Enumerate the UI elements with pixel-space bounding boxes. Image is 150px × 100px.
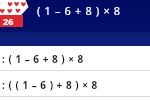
button[interactable]: : ( 1 – 6 + 8 ) × 8 <box>0 46 150 71</box>
staticText: : ( ( 1 – 6 ) + 8 ) × 8 <box>2 78 98 92</box>
button[interactable]: Card game <box>0 0 28 28</box>
button[interactable]: : ( ( 1 – 6 ) + 8 ) × 8 <box>0 71 150 97</box>
staticText: : ( 1 – 6 + 8 ) × 8 <box>2 52 84 66</box>
staticText: ( 1 – 6 + 8 ) × 8 <box>37 3 121 18</box>
staticText: 26 <box>3 15 14 27</box>
